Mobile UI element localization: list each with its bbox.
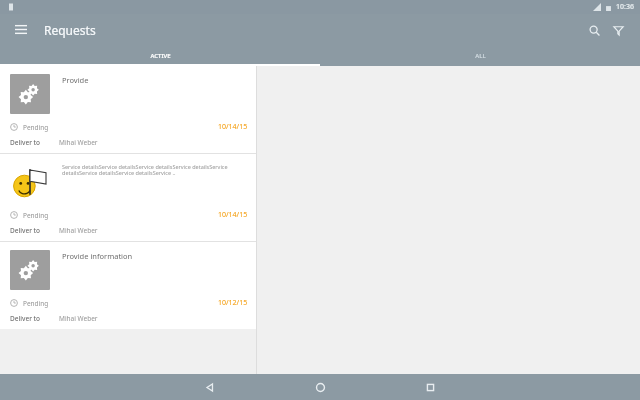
staticText: Service detailsService detailsService de…	[62, 163, 248, 177]
button[interactable]: Home	[265, 374, 375, 400]
staticText: Mihai Weber	[59, 138, 98, 147]
button[interactable]: Provide information	[0, 242, 256, 329]
button[interactable]: Back	[155, 374, 265, 400]
button[interactable]: Service detailsService detailsService de…	[0, 154, 256, 241]
button[interactable]: Filter	[606, 18, 630, 42]
staticText: Mihai Weber	[59, 226, 98, 235]
staticText: 10:36	[616, 2, 634, 12]
button[interactable]: Provide	[0, 66, 256, 153]
button[interactable]: Search	[582, 18, 606, 42]
staticText: Deliver to	[10, 226, 41, 235]
staticText: Deliver to	[10, 138, 41, 147]
staticText: Mihai Weber	[59, 314, 98, 323]
button[interactable]: Recents	[375, 374, 485, 400]
staticText: Pending	[23, 299, 49, 308]
staticText: Requests	[44, 22, 96, 38]
button[interactable]: Menu	[10, 19, 32, 41]
staticText: Deliver to	[10, 314, 41, 323]
staticText: Provide	[62, 75, 89, 85]
staticText: Pending	[23, 123, 49, 132]
staticText: ALL	[475, 52, 486, 60]
staticText: Pending	[23, 211, 49, 220]
staticText: Provide information	[62, 251, 133, 261]
staticText: ACTIVE	[150, 52, 171, 60]
staticText: 10/14/15	[218, 122, 248, 132]
staticText: 10/12/15	[218, 298, 248, 308]
button[interactable]: ACTIVE	[0, 46, 320, 66]
staticText: 10/14/15	[218, 210, 248, 220]
